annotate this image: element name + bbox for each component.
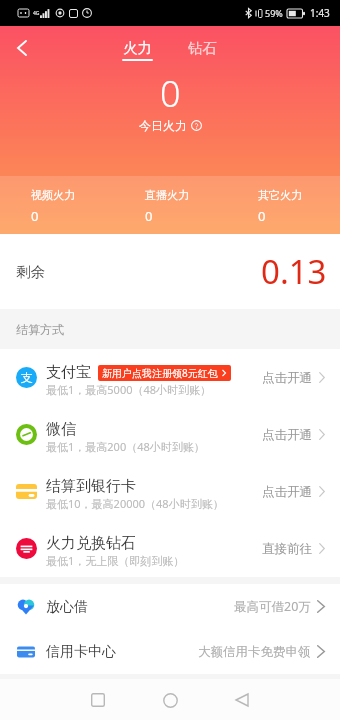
- staticText: 其它火力: [258, 188, 302, 202]
- button[interactable]: Recents: [80, 682, 116, 718]
- button[interactable]: Back: [224, 682, 260, 718]
- staticText: 新用户点我注册领8元红包: [102, 366, 218, 380]
- staticText: 0.13: [261, 249, 327, 294]
- staticText: 支付宝: [46, 363, 91, 382]
- staticText: 最低1，最高200（48小时到账）: [46, 439, 205, 454]
- staticText: 结算到银行卡: [46, 477, 136, 496]
- staticText: 最低1，最高5000（48小时到账）: [46, 382, 212, 397]
- button[interactable]: 支: [0, 349, 340, 406]
- staticText: 点击开通: [262, 370, 312, 386]
- staticText: 0: [31, 207, 39, 225]
- staticText: 1:43: [310, 6, 330, 20]
- button[interactable]: Back: [1, 27, 43, 69]
- staticText: 59%: [265, 7, 283, 19]
- button[interactable]: 信用卡中心: [0, 629, 340, 674]
- staticText: 0: [145, 207, 153, 225]
- staticText: 火力兑换钻石: [46, 534, 136, 553]
- staticText: 点击开通: [262, 484, 312, 500]
- staticText: 今日火力: [139, 118, 187, 133]
- staticText: 结算方式: [16, 322, 64, 337]
- staticText: 直接前往: [262, 541, 312, 557]
- staticText: 剩余: [16, 263, 45, 281]
- staticText: 最高可借20万: [234, 598, 311, 615]
- staticText: 点击开通: [262, 427, 312, 443]
- staticText: 视频火力: [31, 188, 75, 202]
- button[interactable]: 放心借: [0, 584, 340, 629]
- staticText: 支: [21, 370, 33, 385]
- button[interactable]: 钻石: [188, 39, 217, 57]
- staticText: 直播火力: [145, 188, 189, 202]
- staticText: 0: [258, 207, 266, 225]
- staticText: 最低10，最高20000（48小时到账）: [46, 496, 224, 511]
- staticText: 信用卡中心: [46, 643, 116, 661]
- button[interactable]: Home: [152, 682, 188, 718]
- staticText: 4G: [33, 10, 40, 17]
- staticText: 最低1，无上限（即刻到账）: [46, 553, 185, 568]
- button[interactable]: 火力兑换钻石: [0, 520, 340, 577]
- staticText: 0: [160, 69, 181, 118]
- button[interactable]: 新用户点我注册领8元红包: [98, 365, 231, 381]
- staticText: 钻石: [188, 39, 217, 57]
- button[interactable]: 结算到银行卡: [0, 463, 340, 520]
- staticText: 微信: [46, 420, 76, 439]
- button[interactable]: 火力: [122, 39, 153, 61]
- staticText: 火力: [123, 39, 152, 57]
- button[interactable]: 微信: [0, 406, 340, 463]
- staticText: 放心借: [46, 598, 88, 616]
- staticText: 大额信用卡免费申领: [198, 644, 311, 660]
